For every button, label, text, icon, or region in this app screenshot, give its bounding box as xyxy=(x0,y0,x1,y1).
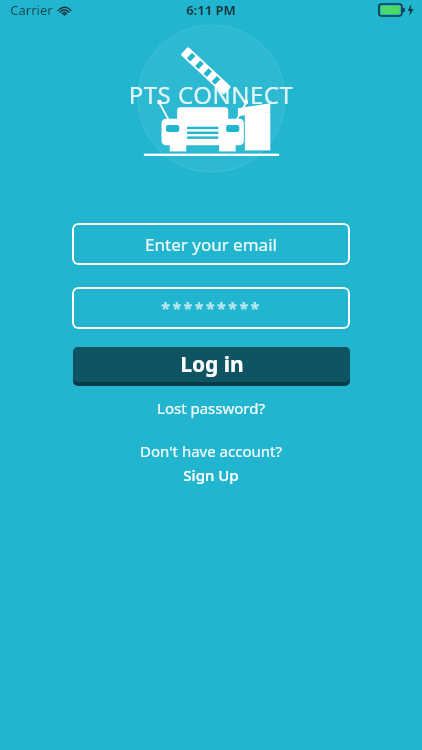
staticText: Sign Up xyxy=(183,465,239,485)
button[interactable]: Log in xyxy=(73,347,350,386)
staticText: Lost password? xyxy=(157,398,265,418)
staticText: Log in xyxy=(180,350,244,379)
staticText: ********* xyxy=(161,297,262,319)
button[interactable]: Lost password? xyxy=(0,396,422,419)
staticText: PTS CONNECT xyxy=(0,78,422,111)
staticText: Enter your email xyxy=(145,233,277,256)
button[interactable]: Enter your email xyxy=(72,223,350,265)
staticText: 6:11 PM xyxy=(186,1,236,19)
button[interactable]: Don't have account? xyxy=(0,441,422,487)
staticText: Don't have account? xyxy=(140,441,282,461)
button[interactable]: ********* xyxy=(72,287,350,329)
staticText: Carrier xyxy=(10,1,53,19)
